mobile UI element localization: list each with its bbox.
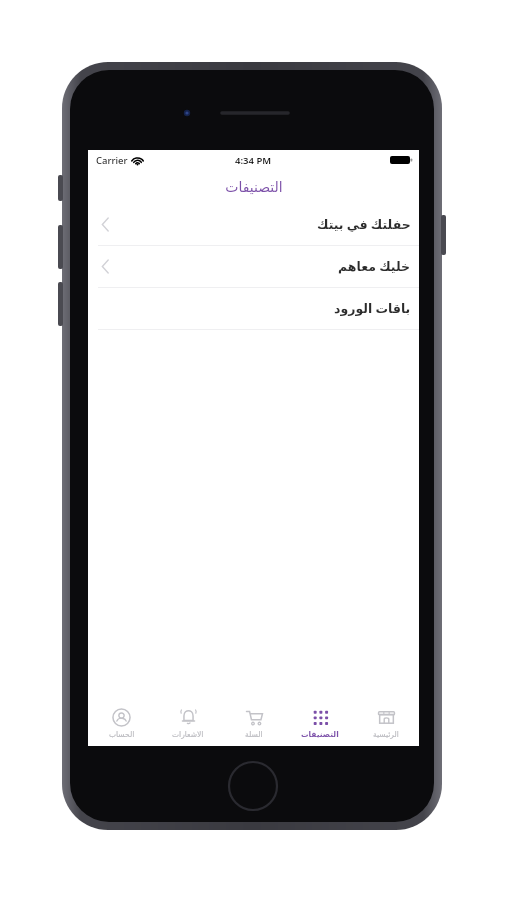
button[interactable]: السلة (221, 700, 287, 746)
staticText: التصنيفات (301, 730, 339, 739)
button[interactable]: Open خليك معاهم (88, 246, 419, 287)
button[interactable]: باقات الورود (88, 288, 419, 329)
button[interactable]: الاشعارات (155, 700, 221, 746)
staticText: الرئيسية (373, 730, 399, 739)
staticText: التصنيفات (225, 179, 283, 195)
other: Open حفلتك في بيتك (101, 218, 110, 231)
staticText: 4:34 PM (235, 154, 272, 167)
button[interactable]: التصنيفات (287, 700, 353, 746)
staticText: خليك معاهم (338, 258, 411, 275)
button[interactable]: الرئيسية (353, 700, 419, 746)
other: Open خليك معاهم (101, 260, 110, 273)
staticText: باقات الورود (334, 300, 411, 317)
staticText: الاشعارات (172, 730, 204, 739)
staticText: Carrier (96, 154, 128, 167)
staticText: السلة (245, 730, 263, 739)
button[interactable]: الحساب (88, 700, 155, 746)
staticText: حفلتك في بيتك (317, 216, 411, 233)
staticText: الحساب (109, 730, 135, 739)
button[interactable]: Open حفلتك في بيتك (88, 204, 419, 245)
